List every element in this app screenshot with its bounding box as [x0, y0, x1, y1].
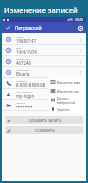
staticText: Пароль [16, 101, 26, 104]
staticText: 467246 [16, 60, 32, 66]
staticText: 8-800-8888-88 [16, 82, 46, 88]
button[interactable]: Удалить [49, 104, 86, 113]
button[interactable]: Ещё [77, 69, 84, 76]
staticText: 14/4/1974 [16, 49, 37, 55]
staticText: Изменение записей [4, 5, 78, 15]
button[interactable]: Выбрано [2, 22, 86, 33]
button[interactable]: Дата [2, 45, 86, 56]
staticText: Имя клиента [16, 90, 32, 93]
staticText: Логин [16, 35, 24, 38]
other: Выбрано [6, 26, 10, 30]
button[interactable]: Ещё [77, 47, 84, 54]
button[interactable]: Ещё [77, 58, 84, 65]
staticText: Делать выбранной [57, 96, 86, 104]
staticText: Blue/q [16, 71, 30, 77]
button[interactable]: Логин [2, 34, 86, 45]
button[interactable]: Ещё [77, 91, 84, 98]
staticText: Петровский [15, 25, 42, 31]
staticText: Изменить тип [57, 89, 80, 93]
staticText: ДОБАВИТЬ ЗАПИСЬ [29, 118, 62, 123]
staticText: •••••••••• [16, 104, 33, 110]
staticText: 19680147 [16, 38, 37, 44]
button[interactable]: Пароль [2, 100, 86, 111]
button[interactable]: ДОБАВИТЬ ЗАПИСЬ [5, 116, 83, 124]
button[interactable]: Имя клиента [2, 89, 86, 100]
button[interactable]: Изменить тип [49, 86, 86, 95]
button[interactable]: Настройки [75, 23, 85, 33]
button[interactable]: Ещё [77, 36, 84, 43]
button[interactable]: Делать выбранной [49, 95, 86, 104]
staticText: Телефон [16, 79, 27, 82]
button[interactable]: Категория [2, 67, 86, 78]
staticText: Удалить [57, 107, 70, 111]
button[interactable]: СОХРАНИТЬ [5, 126, 83, 134]
button[interactable]: Ещё [77, 80, 84, 87]
staticText: Категория [16, 68, 29, 71]
button[interactable]: Изменить имя [49, 77, 86, 86]
button[interactable]: Номер карт [2, 56, 86, 67]
staticText: my-login [16, 93, 35, 99]
staticText: Дата [16, 46, 22, 49]
staticText: 14:15 [75, 18, 84, 22]
staticText: Номер карт [16, 57, 31, 60]
staticText: СОХРАНИТЬ [35, 128, 55, 133]
button[interactable]: Телефон [2, 78, 86, 89]
staticText: Изменить имя [57, 80, 81, 84]
